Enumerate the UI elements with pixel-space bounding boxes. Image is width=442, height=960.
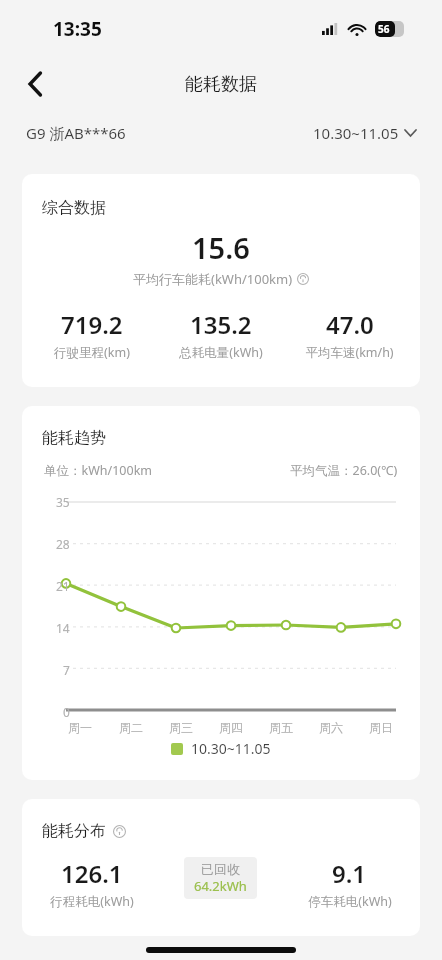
staticText: 35 — [56, 494, 70, 510]
staticText: 综合数据 — [42, 198, 106, 218]
staticText: 停车耗电(kWh) — [308, 893, 392, 910]
button[interactable]: Back — [12, 61, 58, 107]
staticText: 能耗趋势 — [42, 428, 106, 448]
staticText: 平均气温：26.0(℃) — [290, 462, 398, 479]
staticText: 周六 — [319, 720, 343, 735]
staticText: 单位：kWh/100km — [44, 462, 152, 479]
staticText: 9.1 — [332, 857, 367, 890]
staticText: 0 — [63, 704, 70, 720]
staticText: 行驶里程(km) — [54, 344, 130, 361]
staticText: 719.2 — [61, 308, 123, 341]
staticText: 7 — [63, 662, 70, 678]
staticText: 行程耗电(kWh) — [50, 893, 134, 910]
staticText: 15.6 — [192, 228, 250, 267]
staticText: 10.30~11.05 — [191, 739, 271, 758]
staticText: 能耗数据 — [185, 73, 257, 96]
staticText: 周一 — [68, 720, 92, 735]
staticText: 14 — [56, 620, 70, 636]
staticText: 周五 — [269, 720, 293, 735]
staticText: 64.2kWh — [194, 877, 247, 895]
staticText: 周三 — [169, 720, 193, 735]
staticText: 平均车速(km/h) — [305, 344, 394, 361]
staticText: 总耗电量(kWh) — [179, 344, 263, 361]
staticText: 47.0 — [326, 308, 374, 341]
staticText: 56 — [378, 22, 390, 36]
staticText: 135.2 — [190, 308, 252, 341]
staticText: 周日 — [369, 720, 393, 735]
button[interactable]: 10.30~11.05 — [313, 123, 416, 143]
staticText: G9 浙AB***66 — [26, 123, 126, 143]
staticText: 21 — [56, 578, 70, 594]
staticText: 能耗分布 — [42, 821, 106, 841]
staticText: 平均行车能耗(kWh/100km) — [133, 270, 293, 288]
staticText: 126.1 — [61, 857, 123, 890]
staticText: 已回收 — [201, 861, 240, 877]
staticText: 周二 — [119, 720, 143, 735]
staticText: 周四 — [219, 720, 243, 735]
staticText: 28 — [56, 536, 70, 552]
staticText: 13:35 — [53, 16, 102, 42]
staticText: 10.30~11.05 — [313, 123, 399, 143]
